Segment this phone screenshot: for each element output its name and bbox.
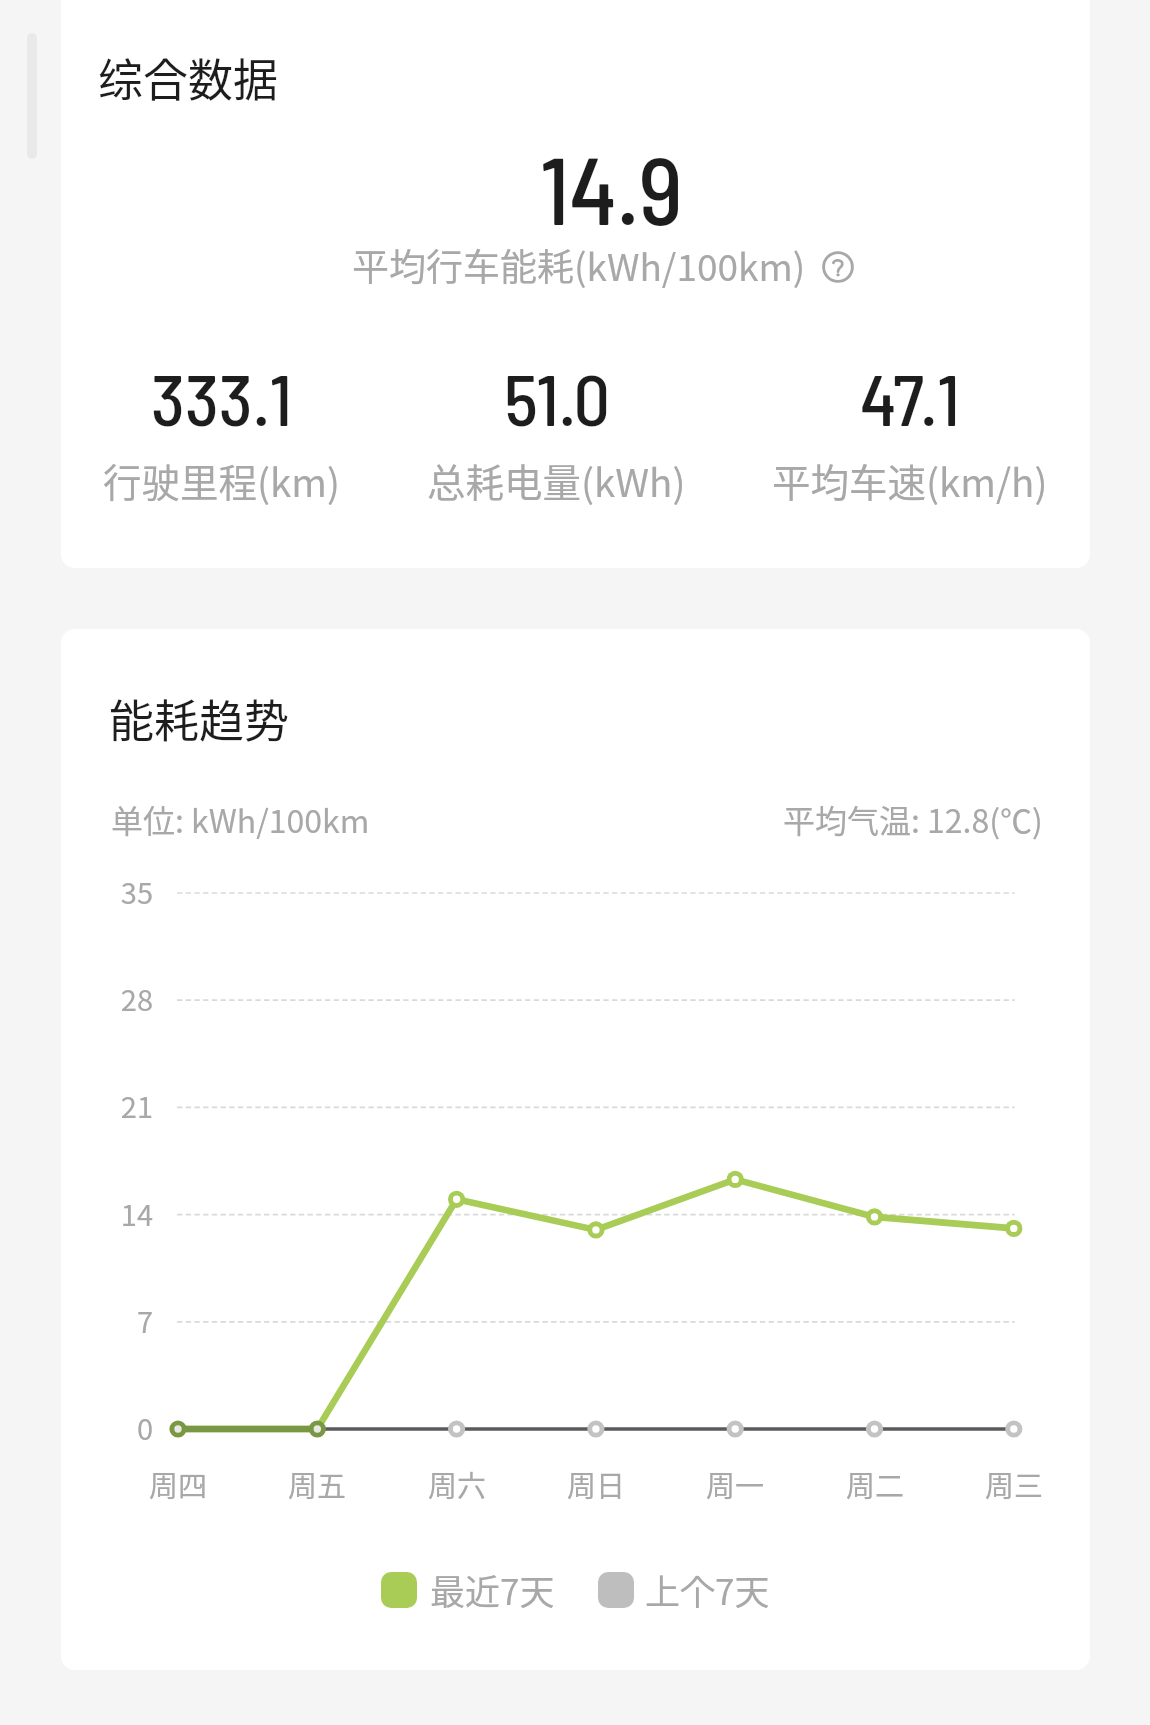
staticText: 周一: [675, 1463, 795, 1505]
staticText: 周二: [815, 1463, 935, 1505]
staticText: 0: [61, 1406, 153, 1448]
staticText: 最近7天: [430, 1564, 555, 1615]
staticText: 周四: [118, 1463, 238, 1505]
button[interactable]: 最近7天: [381, 1564, 555, 1615]
staticText: 周五: [257, 1463, 377, 1505]
button[interactable]: 上个7天: [598, 1564, 770, 1615]
staticText: 单位: kWh/100km: [111, 796, 370, 842]
staticText: 周日: [536, 1463, 656, 1505]
button[interactable]: 能耗趋势: [61, 629, 1090, 1670]
staticText: 平均气温: 12.8(℃): [783, 796, 1043, 842]
staticText: 周六: [397, 1463, 517, 1505]
staticText: 51.0: [504, 354, 610, 440]
staticText: 平均车速(km/h): [772, 452, 1048, 508]
staticText: 综合数据: [98, 45, 279, 110]
button[interactable]: 333.1: [103, 354, 340, 508]
button[interactable]: 综合数据: [61, 0, 1090, 568]
staticText: 7: [61, 1299, 153, 1341]
staticText: 总耗电量(kWh): [427, 452, 686, 508]
staticText: 14.9: [133, 131, 1090, 244]
staticText: 平均行车能耗(kWh/100km): [352, 238, 806, 292]
staticText: 行驶里程(km): [103, 452, 340, 508]
staticText: 周三: [954, 1463, 1074, 1505]
button[interactable]: 51.0: [427, 354, 686, 508]
staticText: 21: [61, 1084, 153, 1126]
staticText: 14: [61, 1192, 153, 1234]
button[interactable]: 帮助说明: [822, 251, 854, 283]
staticText: 28: [61, 977, 153, 1019]
staticText: 35: [61, 870, 153, 912]
staticText: 47.1: [860, 354, 960, 440]
button[interactable]: 47.1: [772, 354, 1048, 508]
staticText: 上个7天: [645, 1564, 770, 1615]
staticText: 能耗趋势: [109, 686, 290, 751]
staticText: 333.1: [151, 354, 293, 440]
